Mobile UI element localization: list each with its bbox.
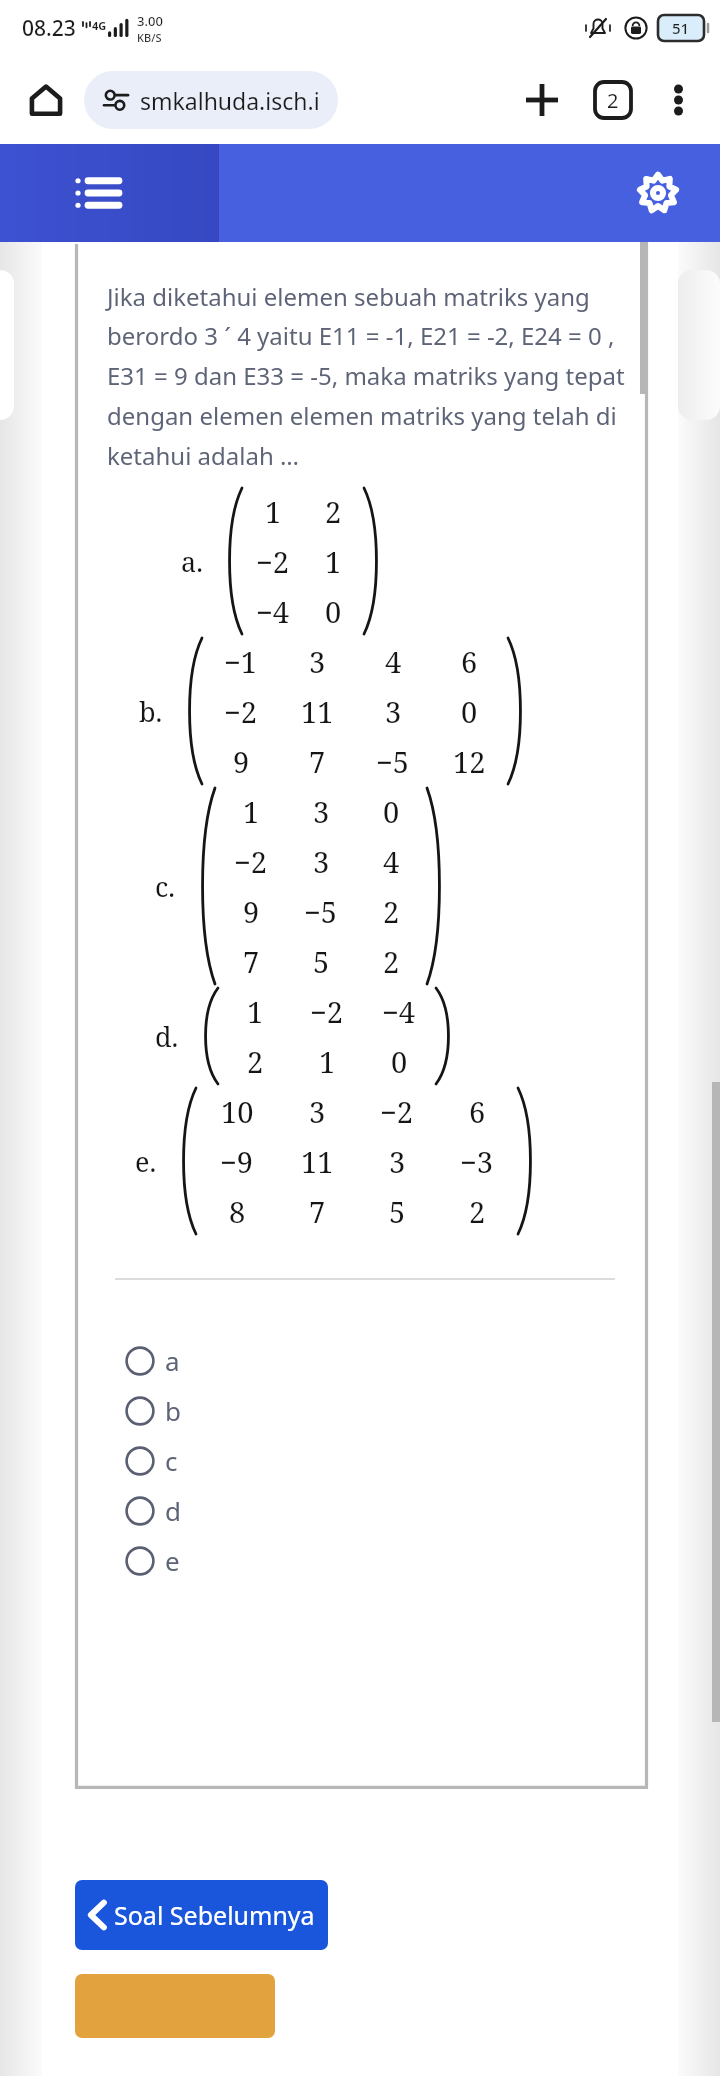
staticText: a xyxy=(165,1343,180,1378)
button[interactable]: b xyxy=(107,1386,628,1435)
staticText: 0 xyxy=(391,1042,408,1081)
staticText: Jika diketahui elemen sebuah matriks yan… xyxy=(107,280,628,472)
staticText: −4 xyxy=(256,592,290,631)
staticText: 8 xyxy=(229,1192,246,1231)
staticText: b xyxy=(165,1393,181,1428)
button[interactable]: d xyxy=(107,1486,628,1535)
staticText: d. xyxy=(155,1018,179,1055)
staticText: 0 xyxy=(383,792,400,831)
button[interactable]: Settings xyxy=(626,161,690,225)
button[interactable]: Menu xyxy=(64,160,130,226)
staticText: 12 xyxy=(453,742,486,781)
staticText: 3 xyxy=(385,692,402,731)
staticText: 0 xyxy=(325,592,342,631)
staticText: 51 xyxy=(672,18,690,38)
staticText: 1 xyxy=(247,992,264,1031)
staticText: 3 xyxy=(309,642,326,681)
button[interactable]: smkalhuda.isch.id/ xyxy=(84,71,338,129)
staticText: −2 xyxy=(310,992,344,1031)
staticText: −2 xyxy=(234,842,268,881)
staticText: 0 xyxy=(461,692,478,731)
staticText: 4 xyxy=(383,842,400,881)
staticText: 2 xyxy=(325,492,342,531)
staticText: 7 xyxy=(309,1192,326,1231)
staticText: b. xyxy=(139,693,163,730)
staticText: 9 xyxy=(243,892,260,931)
staticText: −2 xyxy=(224,692,258,731)
button[interactable] xyxy=(75,1974,275,2038)
button[interactable]: c xyxy=(107,1436,628,1485)
staticText: 4G xyxy=(92,18,107,33)
staticText: 4 xyxy=(385,642,402,681)
staticText: −2 xyxy=(380,1092,414,1131)
button[interactable]: Home xyxy=(18,72,74,128)
staticText: 1 xyxy=(319,1042,336,1081)
staticText: smkalhuda.isch.id/ xyxy=(140,85,328,116)
staticText: 1 xyxy=(265,492,282,531)
staticText: 2 xyxy=(469,1192,486,1231)
button[interactable]: Soal Sebelumnya xyxy=(75,1880,328,1950)
staticText: 11 xyxy=(301,692,334,731)
button[interactable]: Tabs, 2 open xyxy=(586,73,640,127)
staticText: −3 xyxy=(460,1142,494,1181)
button[interactable]: a xyxy=(107,1336,628,1385)
button[interactable]: New tab xyxy=(514,72,570,128)
staticText: 9 xyxy=(233,742,250,781)
staticText: a. xyxy=(181,543,203,580)
button[interactable]: More options xyxy=(652,74,704,126)
staticText: d xyxy=(165,1493,181,1528)
staticText: 1 xyxy=(325,542,342,581)
staticText: e xyxy=(165,1543,180,1578)
staticText: 5 xyxy=(389,1192,406,1231)
staticText: 2 xyxy=(383,942,400,981)
staticText: 11 xyxy=(301,1142,334,1181)
staticText: −5 xyxy=(304,892,338,931)
staticText: 1 xyxy=(243,792,260,831)
staticText: 6 xyxy=(469,1092,486,1131)
staticText: e. xyxy=(135,1143,157,1180)
staticText: 2 xyxy=(383,892,400,931)
staticText: Soal Sebelumnya xyxy=(114,1898,315,1932)
staticText: 5 xyxy=(313,942,330,981)
staticText: 3 xyxy=(389,1142,406,1181)
staticText: −9 xyxy=(220,1142,254,1181)
staticText: 10 xyxy=(221,1092,254,1131)
staticText: 3 xyxy=(309,1092,326,1131)
staticText: 3.00 xyxy=(137,12,163,30)
staticText: 2 xyxy=(607,87,619,114)
staticText: 6 xyxy=(461,642,478,681)
staticText: 3 xyxy=(313,842,330,881)
staticText: −2 xyxy=(256,542,290,581)
staticText: 2 xyxy=(247,1042,264,1081)
staticText: KB/S xyxy=(137,30,162,45)
staticText: −4 xyxy=(382,992,416,1031)
staticText: c. xyxy=(155,868,176,905)
staticText: −5 xyxy=(376,742,410,781)
staticText: c xyxy=(165,1443,178,1478)
staticText: −1 xyxy=(224,642,258,681)
staticText: 7 xyxy=(309,742,326,781)
staticText: 3 xyxy=(313,792,330,831)
button[interactable]: e xyxy=(107,1536,628,1585)
staticText: 08.23 xyxy=(22,14,76,43)
staticText: 7 xyxy=(243,942,260,981)
